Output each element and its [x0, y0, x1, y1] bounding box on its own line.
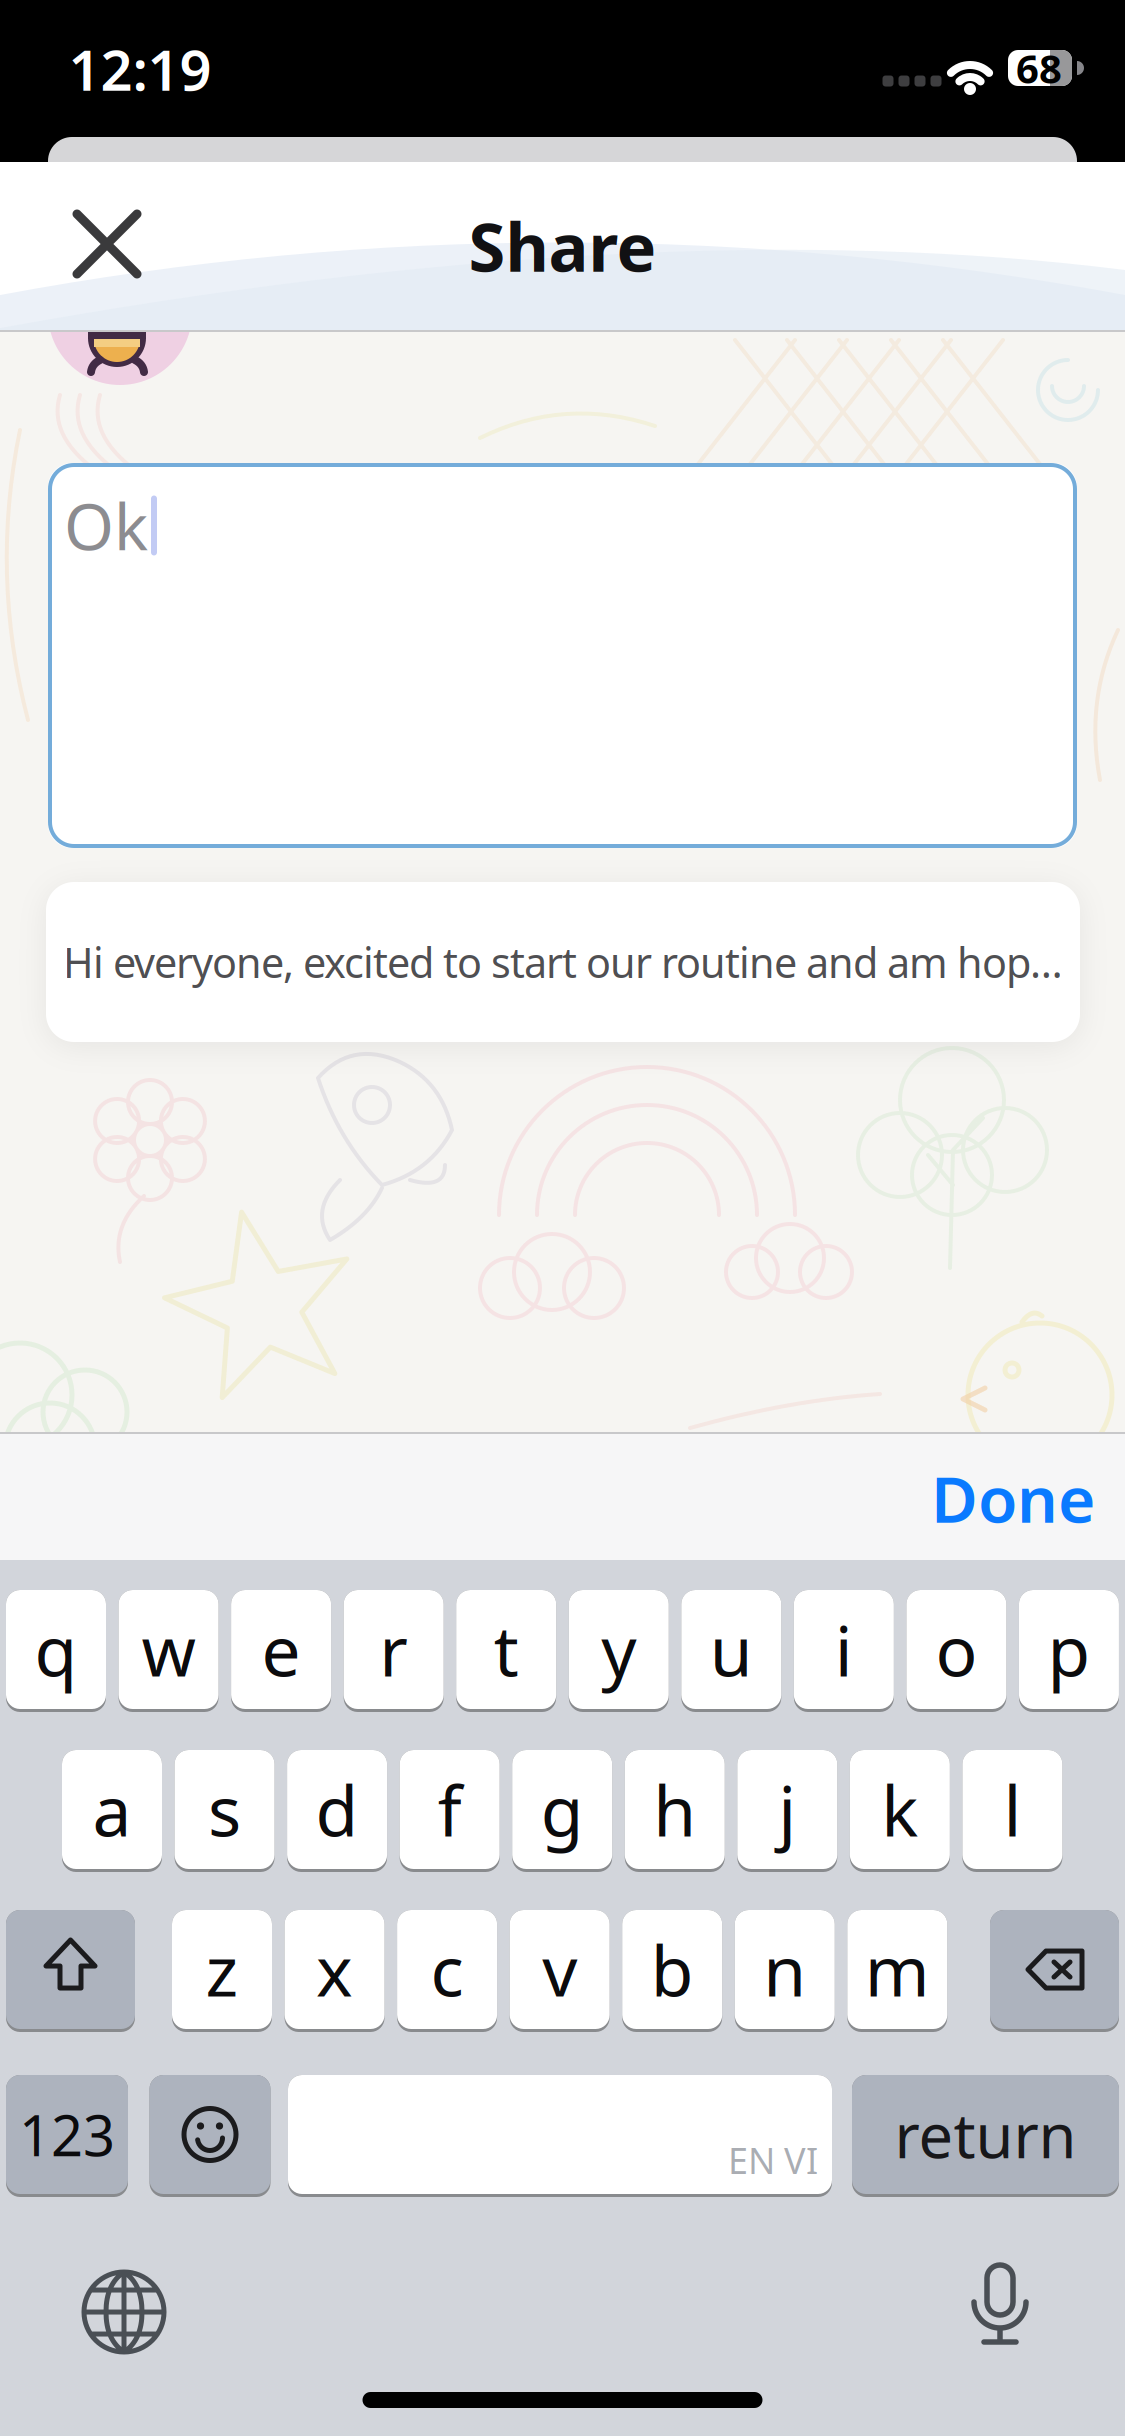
button[interactable]: e — [231, 1590, 331, 1712]
button[interactable]: Shift — [6, 1910, 135, 2032]
button[interactable]: s — [175, 1750, 275, 1872]
button[interactable]: Close — [52, 189, 162, 299]
button[interactable]: Message text field — [48, 463, 1077, 848]
button[interactable]: Delete — [990, 1910, 1119, 2032]
button[interactable]: h — [625, 1750, 725, 1872]
button[interactable]: u — [681, 1590, 781, 1712]
button[interactable]: p — [1019, 1590, 1119, 1712]
button[interactable]: t — [456, 1590, 556, 1712]
button[interactable]: x — [285, 1910, 385, 2032]
button[interactable]: f — [400, 1750, 500, 1872]
staticText: g — [541, 1763, 584, 1856]
staticText: y — [601, 1603, 636, 1696]
staticText: 12:19 — [68, 32, 211, 106]
staticText: Share — [468, 202, 656, 290]
button[interactable]: Dictate — [940, 2250, 1060, 2370]
staticText: return — [894, 2094, 1076, 2175]
staticText: w — [142, 1603, 196, 1696]
staticText: o — [935, 1603, 977, 1696]
staticText: l — [1003, 1763, 1021, 1856]
button[interactable]: z — [172, 1910, 272, 2032]
staticText: u — [710, 1603, 753, 1696]
button[interactable]: a — [62, 1750, 162, 1872]
staticText: z — [205, 1923, 238, 2016]
staticText: a — [92, 1763, 131, 1856]
staticText: q — [34, 1603, 77, 1696]
staticText: k — [881, 1763, 918, 1856]
button[interactable]: Hi everyone, excited to start our routin… — [46, 882, 1080, 1042]
button[interactable]: j — [737, 1750, 837, 1872]
button[interactable]: v — [510, 1910, 610, 2032]
button[interactable]: Done — [931, 1455, 1095, 1540]
staticText: f — [438, 1763, 462, 1856]
staticText: 123 — [19, 2097, 115, 2172]
staticText: s — [208, 1763, 241, 1856]
button[interactable]: g — [512, 1750, 612, 1872]
staticText: p — [1047, 1603, 1090, 1696]
staticText: Done — [931, 1455, 1095, 1540]
staticText: n — [763, 1923, 806, 2016]
button[interactable]: Next keyboard — [64, 2252, 184, 2372]
button[interactable]: r — [344, 1590, 444, 1712]
button[interactable]: k — [850, 1750, 950, 1872]
button[interactable]: o — [906, 1590, 1006, 1712]
staticText: c — [431, 1923, 464, 2016]
staticText: Ok — [64, 483, 148, 568]
button[interactable]: b — [622, 1910, 722, 2032]
button[interactable]: l — [962, 1750, 1062, 1872]
staticText: EN VI — [728, 2136, 818, 2184]
staticText: b — [651, 1923, 694, 2016]
button[interactable]: y — [569, 1590, 669, 1712]
staticText: t — [494, 1603, 519, 1696]
button[interactable]: return — [852, 2075, 1119, 2197]
staticText: Hi everyone, excited to start our routin… — [63, 935, 1063, 989]
button[interactable]: 123 — [6, 2075, 128, 2197]
button[interactable]: m — [847, 1910, 947, 2032]
button[interactable]: w — [119, 1590, 219, 1712]
button[interactable]: c — [397, 1910, 497, 2032]
staticText: x — [316, 1923, 353, 2016]
staticText: 68 — [1016, 41, 1062, 94]
staticText: h — [653, 1763, 696, 1856]
staticText: r — [379, 1603, 408, 1696]
button[interactable]: i — [794, 1590, 894, 1712]
staticText: e — [262, 1603, 301, 1696]
button[interactable]: q — [6, 1590, 106, 1712]
button[interactable]: d — [287, 1750, 387, 1872]
staticText: m — [865, 1923, 930, 2016]
staticText: d — [316, 1763, 359, 1856]
staticText: j — [778, 1763, 796, 1856]
button[interactable]: n — [735, 1910, 835, 2032]
staticText: v — [542, 1923, 577, 2016]
staticText: i — [835, 1603, 853, 1696]
button[interactable]: Emoji — [149, 2075, 270, 2197]
button[interactable]: Space — [288, 2075, 832, 2197]
